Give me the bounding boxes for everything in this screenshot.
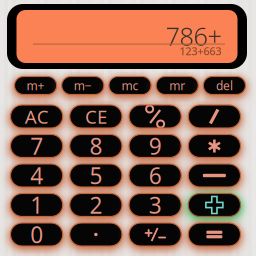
staticText: m+ — [27, 77, 45, 93]
button[interactable]: 0 — [10, 223, 63, 246]
button[interactable]: CE — [70, 105, 122, 128]
staticText: 123+663 — [179, 44, 221, 58]
staticText: CE — [85, 104, 107, 129]
button[interactable]: m− — [62, 76, 104, 94]
button[interactable]: 2 — [70, 193, 122, 216]
button[interactable]: Multiply — [188, 134, 240, 157]
button[interactable]: mr — [156, 76, 198, 94]
button[interactable]: Decimal point — [70, 223, 122, 246]
button[interactable]: 4 — [10, 164, 63, 187]
button[interactable]: 6 — [129, 164, 181, 187]
button[interactable]: Plus — [188, 193, 240, 216]
staticText: 1 — [30, 190, 43, 220]
staticText: 8 — [89, 131, 102, 161]
button[interactable]: 8 — [70, 134, 122, 157]
staticText: 0 — [30, 219, 43, 249]
staticText: m− — [74, 77, 92, 93]
button[interactable]: 9 — [129, 134, 181, 157]
button[interactable]: Minus — [188, 164, 240, 187]
button[interactable]: 1 — [10, 193, 63, 216]
staticText: 3 — [149, 190, 162, 220]
button[interactable]: 7 — [10, 134, 63, 157]
button[interactable]: Percent — [129, 105, 181, 128]
button[interactable]: m+ — [14, 76, 57, 94]
staticText: 2 — [89, 190, 102, 220]
staticText: 786+ — [165, 19, 221, 53]
staticText: 6 — [149, 160, 162, 190]
button[interactable]: 5 — [70, 164, 122, 187]
button[interactable]: Divide — [188, 105, 240, 128]
button[interactable]: 3 — [129, 193, 181, 216]
button[interactable]: del — [203, 76, 245, 94]
staticText: mr — [169, 77, 185, 93]
staticText: 5 — [89, 160, 102, 190]
staticText: mc — [121, 77, 138, 93]
staticText: 7 — [30, 131, 43, 161]
staticText: del — [216, 77, 233, 93]
button[interactable]: Plus minus — [129, 223, 181, 246]
button[interactable]: Equals — [188, 223, 240, 246]
staticText: 4 — [30, 160, 43, 190]
staticText: 9 — [149, 131, 162, 161]
staticText: AC — [25, 104, 49, 129]
button[interactable]: AC — [10, 105, 63, 128]
button[interactable]: mc — [109, 76, 151, 94]
